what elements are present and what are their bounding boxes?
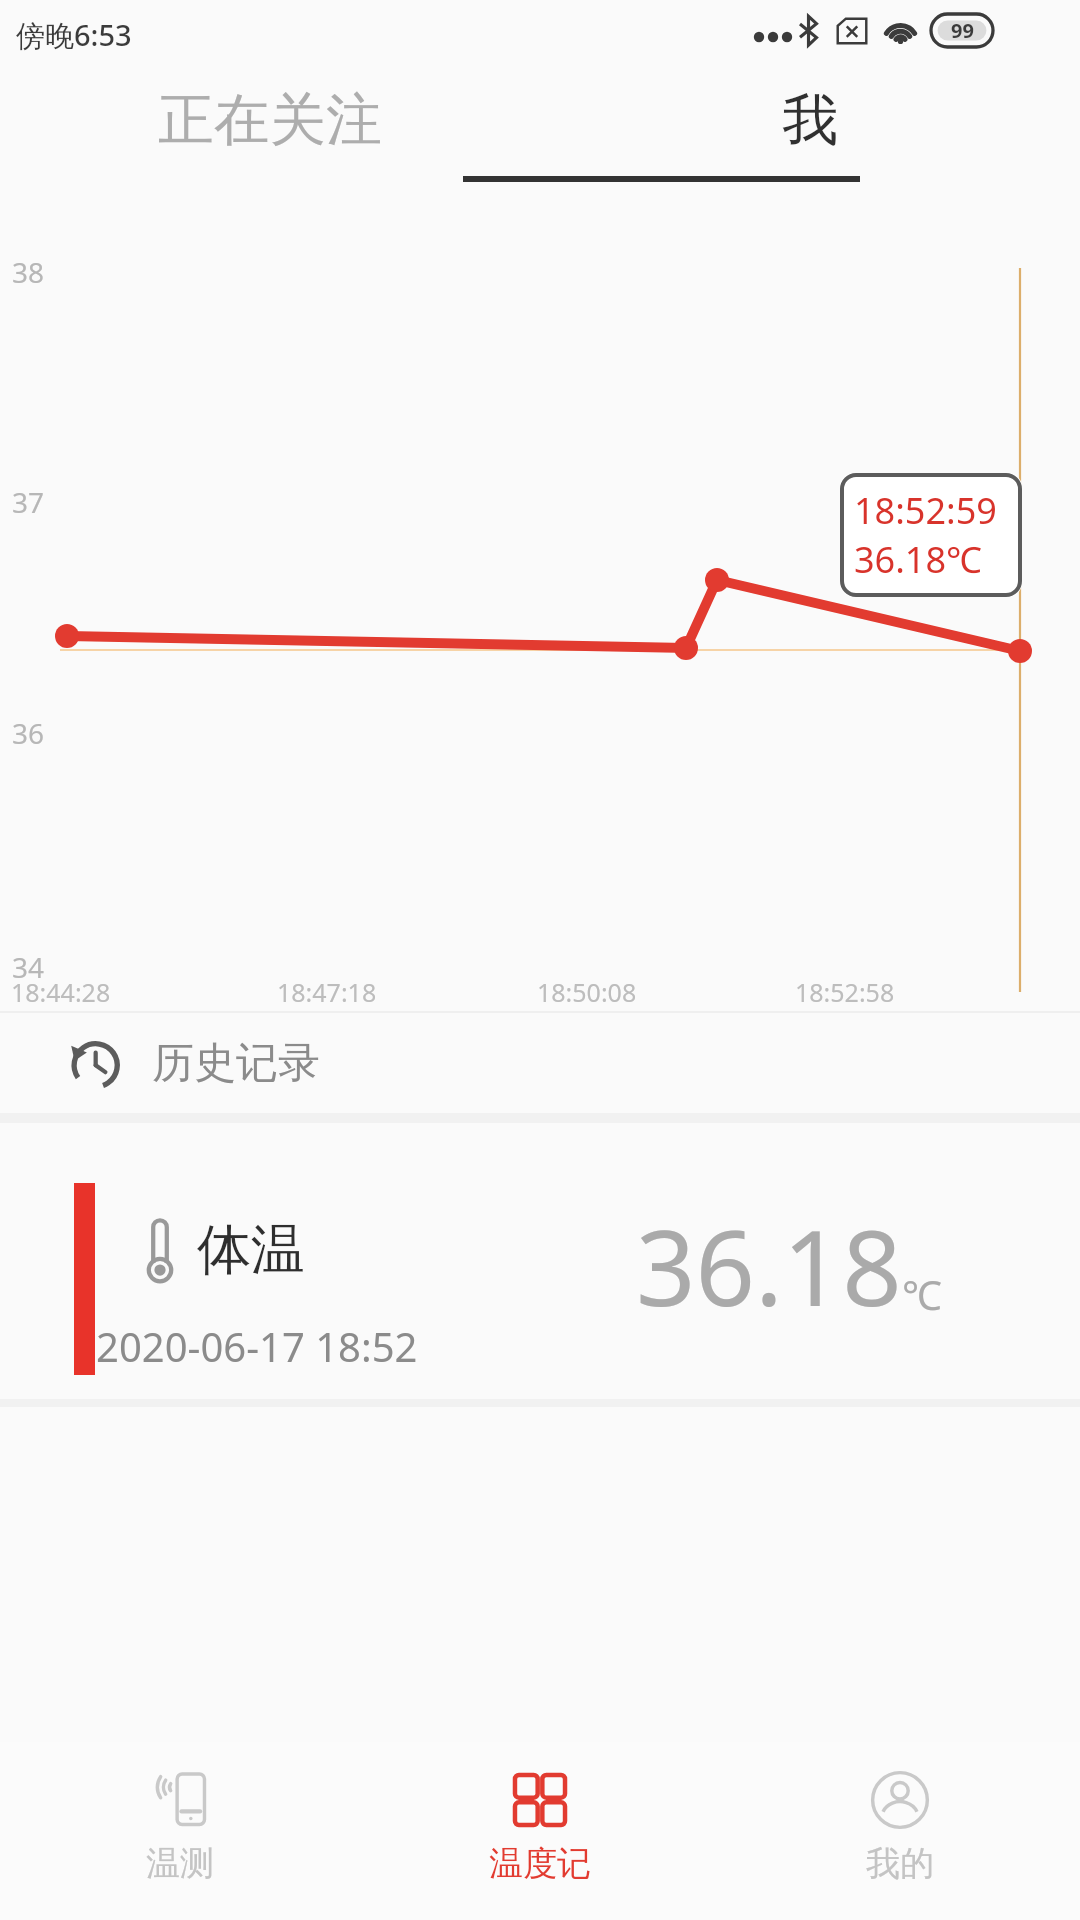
staticText: 温度记 (489, 1842, 591, 1885)
staticText: 我 (782, 85, 838, 156)
staticText: 18:47:18 (277, 975, 377, 1009)
staticText: 18:52:59 (854, 486, 997, 535)
button[interactable]: 温度记 (360, 1742, 720, 1920)
staticText: ℃ (902, 1267, 942, 1321)
button[interactable]: 我 (540, 58, 1080, 182)
button[interactable]: 体温 (0, 1123, 1080, 1399)
staticText: 傍晚6:53 (16, 15, 132, 55)
staticText: 34 (12, 948, 45, 986)
button[interactable]: 我的 (720, 1742, 1080, 1920)
staticText: 2020-06-17 18:52 (96, 1319, 418, 1373)
button[interactable]: 历史记录 (0, 1013, 1080, 1113)
staticText: 历史记录 (152, 1037, 320, 1090)
button[interactable]: 正在关注 (0, 58, 540, 182)
staticText: 38 (12, 253, 45, 291)
button[interactable]: 温测 (0, 1742, 360, 1920)
staticText: 36.18℃ (854, 535, 982, 584)
staticText: 99 (951, 17, 974, 44)
staticText: 我的 (866, 1842, 934, 1885)
staticText: 18:50:08 (537, 975, 637, 1009)
staticText: 37 (12, 483, 45, 521)
staticText: 正在关注 (158, 85, 382, 156)
staticText: 体温 (197, 1216, 305, 1284)
staticText: 18:52:58 (795, 975, 895, 1009)
staticText: 36.18 (636, 1195, 902, 1337)
staticText: 18:44:28 (11, 975, 111, 1009)
staticText: 36 (12, 714, 45, 752)
staticText: 温测 (146, 1842, 214, 1885)
